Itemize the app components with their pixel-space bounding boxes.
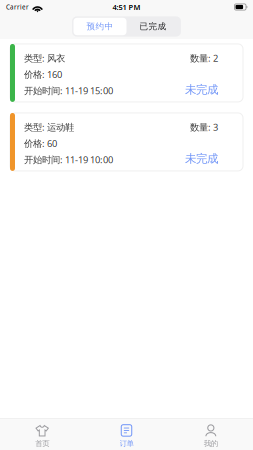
staticText: 首页: [35, 439, 49, 448]
button[interactable]: 首页: [0, 418, 84, 450]
staticText: 开始时间: 11-19 10:00: [24, 153, 113, 166]
button[interactable]: 类型: 风衣: [10, 45, 243, 103]
button[interactable]: 已完成: [126, 18, 179, 35]
staticText: 订单: [119, 439, 133, 448]
button[interactable]: 订单: [84, 418, 169, 450]
staticText: 类型: 运动鞋: [24, 121, 74, 133]
staticText: 已完成: [139, 21, 166, 32]
staticText: 我的: [204, 439, 218, 448]
staticText: 预约中: [86, 21, 113, 32]
button[interactable]: 类型: 运动鞋: [10, 114, 243, 172]
staticText: 未完成: [185, 151, 218, 166]
button[interactable]: 我的: [169, 418, 253, 450]
staticText: 4:51 PM: [112, 2, 140, 12]
staticText: 未完成: [185, 82, 218, 97]
staticText: 价格: 160: [24, 68, 62, 81]
staticText: Carrier: [6, 3, 29, 11]
staticText: 价格: 60: [24, 137, 57, 150]
staticText: 数量: 3: [190, 121, 218, 133]
staticText: 类型: 风衣: [24, 52, 65, 64]
staticText: 数量: 2: [190, 52, 218, 64]
staticText: 开始时间: 11-19 15:00: [24, 84, 113, 97]
button[interactable]: 预约中: [73, 18, 126, 35]
